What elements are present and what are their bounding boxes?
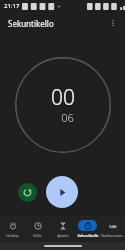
staticText: Sekuntikello: [77, 233, 99, 238]
button[interactable]: Reset: [18, 183, 37, 202]
button[interactable]: Nukkumaan…: [100, 216, 125, 242]
button[interactable]: Herätys: [0, 216, 25, 242]
staticText: 00: [51, 83, 75, 112]
staticText: Kello: [33, 233, 42, 238]
staticText: Herätys: [6, 233, 19, 238]
button[interactable]: Ajastin: [50, 216, 75, 242]
button[interactable]: Sekuntikello: [75, 216, 100, 242]
staticText: Sekuntikello: [8, 18, 54, 29]
button[interactable]: More options: [105, 15, 121, 31]
staticText: Nukkumaan…: [101, 233, 125, 238]
button[interactable]: Start: [46, 176, 78, 208]
staticText: Ajastin: [57, 233, 69, 238]
button[interactable]: Kello: [25, 216, 50, 242]
staticText: 21:17: [4, 2, 20, 10]
staticText: 06: [61, 110, 74, 125]
